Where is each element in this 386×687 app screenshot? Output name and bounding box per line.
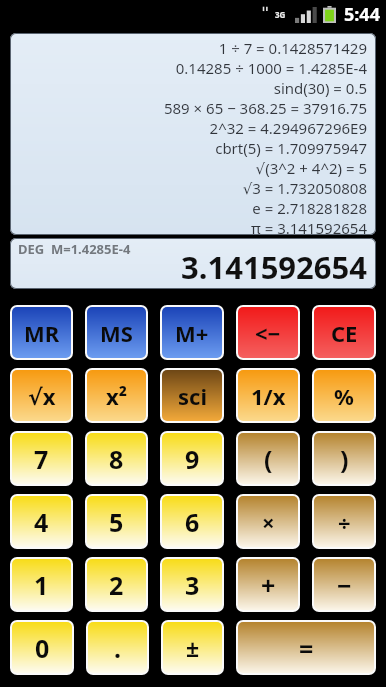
staticText: 1 (34, 568, 49, 602)
staticText: 0 (35, 631, 50, 665)
button[interactable]: 8 (87, 433, 146, 484)
staticText: e = 2.718281828 (252, 198, 367, 218)
staticText: 0.14285 ÷ 1000 = 1.4285E-4 (175, 58, 367, 78)
staticText: 1 ÷ 7 = 0.1428571429 (218, 38, 367, 58)
staticText: ± (186, 632, 200, 663)
staticText: 3.141592654 (181, 246, 368, 288)
button[interactable]: sci (162, 370, 222, 421)
staticText: 2^32 = 4.294967296E9 (209, 118, 367, 138)
staticText: 5:44 (344, 2, 380, 27)
button[interactable]: DEG M=1.4285E-4 (10, 238, 376, 289)
button[interactable]: ÷ (314, 496, 374, 547)
button[interactable]: 9 (162, 433, 222, 484)
button[interactable]: = (238, 622, 374, 673)
button[interactable]: 1 ÷ 7 = 0.1428571429 (10, 33, 376, 235)
staticText: 5 (109, 505, 124, 539)
staticText: ( (264, 442, 273, 476)
staticText: M+ (175, 318, 209, 348)
staticText: % (334, 381, 354, 411)
button[interactable]: 4 (12, 496, 71, 547)
button[interactable]: − (314, 559, 374, 610)
button[interactable]: M+ (162, 307, 222, 358)
button[interactable]: ± (163, 622, 222, 673)
button[interactable]: . (88, 622, 147, 673)
staticText: = (299, 631, 314, 665)
staticText: MR (24, 318, 60, 348)
staticText: + (261, 568, 276, 602)
button[interactable]: √x (12, 370, 71, 421)
staticText: MS (100, 318, 133, 348)
button[interactable]: + (238, 559, 298, 610)
staticText: √3 = 1.732050808 (242, 178, 367, 198)
button[interactable]: 5 (87, 496, 146, 547)
staticText: 8 (109, 442, 124, 476)
button[interactable]: CE (314, 307, 374, 358)
staticText: <− (255, 318, 281, 348)
staticText: ÷ (338, 507, 351, 537)
button[interactable]: <− (238, 307, 298, 358)
staticText: . (114, 631, 122, 665)
button[interactable]: 1 (12, 559, 71, 610)
staticText: π = 3.141592654 (251, 218, 367, 235)
button[interactable]: MS (87, 307, 146, 358)
button[interactable]: 7 (12, 433, 71, 484)
staticText: − (337, 568, 352, 602)
button[interactable]: x² (87, 370, 146, 421)
staticText: sind(30) = 0.5 (273, 78, 367, 98)
button[interactable]: ) (314, 433, 374, 484)
staticText: 589 × 65 − 368.25 = 37916.75 (163, 98, 367, 118)
button[interactable]: ( (238, 433, 298, 484)
staticText: DEG M=1.4285E-4 (18, 240, 131, 258)
staticText: CE (331, 318, 358, 348)
staticText: √x (28, 381, 56, 411)
staticText: 2 (109, 568, 124, 602)
staticText: sci (178, 381, 207, 411)
button[interactable]: % (314, 370, 374, 421)
button[interactable]: 1/x (238, 370, 298, 421)
staticText: × (262, 507, 275, 537)
button[interactable]: 6 (162, 496, 222, 547)
button[interactable]: 3 (162, 559, 222, 610)
staticText: √(3^2 + 4^2) = 5 (255, 158, 367, 178)
button[interactable]: × (238, 496, 298, 547)
staticText: 4 (34, 505, 49, 539)
staticText: x² (106, 381, 128, 411)
staticText: cbrt(5) = 1.709975947 (215, 138, 367, 158)
staticText: 7 (34, 442, 49, 476)
staticText: 1/x (251, 381, 286, 411)
button[interactable]: 2 (87, 559, 146, 610)
staticText: ) (340, 442, 349, 476)
staticText: 9 (185, 442, 200, 476)
staticText: 3G (275, 9, 286, 20)
button[interactable]: MR (12, 307, 71, 358)
staticText: 3 (185, 568, 200, 602)
button[interactable]: 0 (12, 622, 72, 673)
staticText: 6 (185, 505, 200, 539)
